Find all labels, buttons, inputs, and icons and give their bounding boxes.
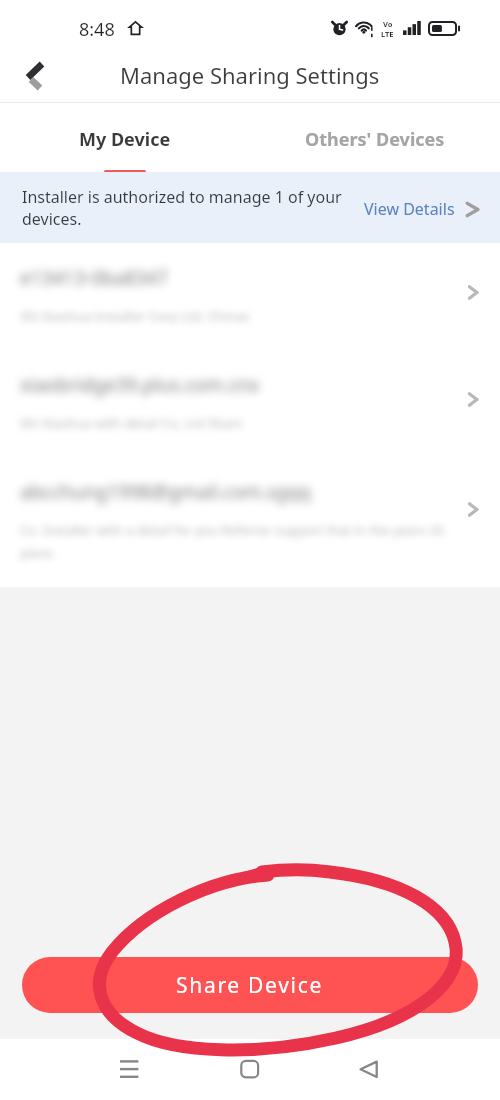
button[interactable]: Share Device: [22, 957, 478, 1013]
staticText: Others' Devices: [305, 127, 445, 152]
button[interactable]: Others' Devices: [250, 103, 500, 172]
staticText: Shi Xiaohua Installer Corp Ltd, Chinax: [20, 307, 250, 325]
button[interactable]: xiaobridge39.plus.com.cnx: [0, 350, 500, 457]
staticText: Share Device: [176, 971, 324, 1000]
staticText: My Device: [79, 127, 171, 152]
staticText: e13413-0ba8347: [20, 265, 168, 291]
staticText: Manage Sharing Settings: [120, 60, 380, 90]
staticText: xiaobridge39.plus.com.cnx: [20, 372, 260, 398]
staticText: Vo: [383, 19, 393, 29]
button[interactable]: View Details: [364, 198, 480, 220]
staticText: LTE: [381, 29, 394, 39]
staticText: View Details: [364, 198, 455, 220]
staticText: Shi Xiaohua with detail Co, Ltd Sham: [20, 414, 243, 432]
staticText: Installer is authorized to manage 1 of y…: [22, 186, 352, 230]
staticText: abcchung1998@gmail.com.sgqq: [20, 479, 311, 505]
button[interactable]: Back: [341, 1042, 397, 1098]
button[interactable]: Back: [10, 53, 54, 97]
button[interactable]: Home: [222, 1042, 278, 1098]
staticText: 8:48: [79, 17, 115, 42]
staticText: plans: [20, 544, 53, 562]
button[interactable]: My Device: [0, 103, 250, 172]
staticText: Co. Installer with a detail for you Refe…: [20, 521, 444, 539]
button[interactable]: abcchung1998@gmail.com.sgqq: [0, 457, 500, 564]
button[interactable]: e13413-0ba8347: [0, 243, 500, 350]
button[interactable]: Recent apps: [101, 1042, 157, 1098]
